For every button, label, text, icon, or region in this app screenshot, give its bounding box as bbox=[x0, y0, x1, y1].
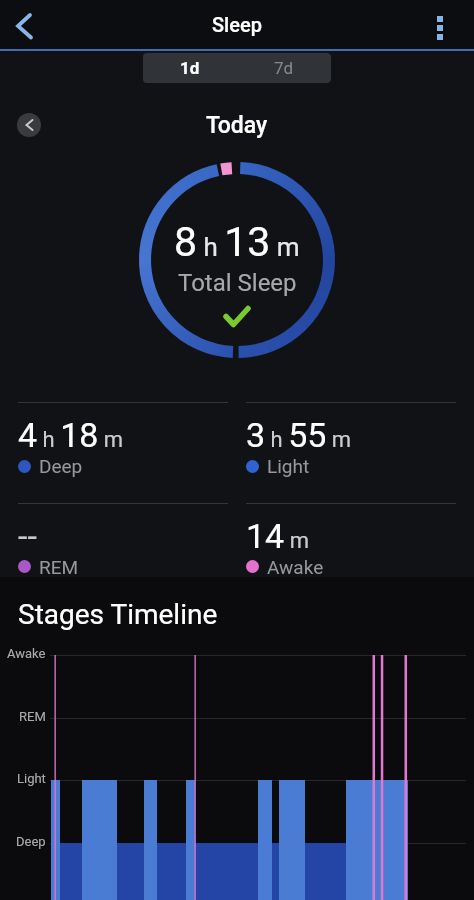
staticText: REM bbox=[39, 556, 79, 577]
staticText: 14 m bbox=[246, 516, 309, 556]
staticText: Sleep bbox=[212, 13, 262, 36]
staticText: Deep bbox=[39, 455, 83, 477]
button[interactable]: 7d bbox=[237, 53, 331, 83]
staticText: Stages Timeline bbox=[18, 598, 218, 631]
button[interactable] bbox=[17, 113, 41, 137]
staticText: 4 h 18 m bbox=[18, 415, 124, 455]
staticText: Light bbox=[17, 771, 46, 786]
staticText: Awake bbox=[267, 556, 324, 577]
staticText: REM bbox=[19, 709, 46, 724]
staticText: Today bbox=[206, 112, 268, 139]
staticText: 1d bbox=[180, 58, 200, 78]
button[interactable]: 1d bbox=[143, 53, 237, 83]
button[interactable] bbox=[426, 0, 474, 49]
staticText: Awake bbox=[7, 646, 46, 661]
staticText: 3 h 55 m bbox=[246, 415, 352, 455]
button[interactable] bbox=[0, 0, 48, 49]
staticText: Light bbox=[267, 455, 310, 477]
staticText: 8 h 13 m bbox=[174, 218, 300, 266]
staticText: -- bbox=[18, 516, 37, 556]
staticText: 7d bbox=[274, 58, 294, 78]
staticText: Deep bbox=[16, 834, 46, 849]
staticText: Total Sleep bbox=[178, 269, 297, 297]
